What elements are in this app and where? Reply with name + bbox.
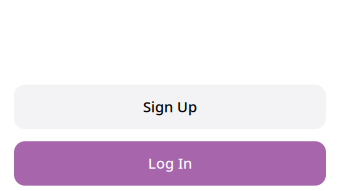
button[interactable]: Log In xyxy=(14,141,326,186)
staticText: Log In xyxy=(148,153,192,173)
staticText: Sign Up xyxy=(143,97,197,116)
button[interactable]: Sign Up xyxy=(14,85,326,129)
